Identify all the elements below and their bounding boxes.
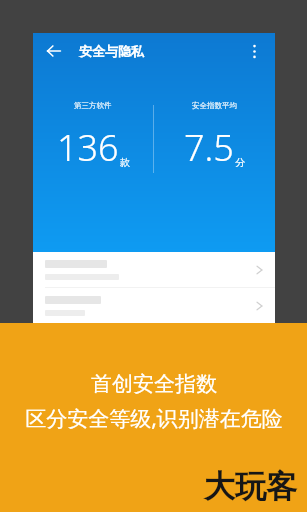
staticText: 7.5 [184, 123, 234, 172]
staticText: 安全指数平均 [192, 101, 237, 110]
button[interactable] [33, 288, 275, 323]
staticText: 安全与隐私 [79, 43, 144, 59]
staticText: 分 [235, 156, 245, 169]
staticText: 款 [120, 156, 130, 169]
staticText: 大玩客 [204, 467, 297, 506]
staticText: 136 [57, 123, 119, 172]
staticText: 第三方软件 [74, 101, 112, 110]
staticText: 区分安全等级,识别潜在危险 [25, 404, 283, 433]
button[interactable]: More options [241, 38, 267, 64]
button[interactable] [33, 252, 275, 287]
button[interactable]: 第三方软件 [33, 101, 153, 172]
button[interactable]: 安全指数平均 [154, 101, 275, 172]
staticText: 首创安全指数 [91, 371, 217, 397]
button[interactable]: Back [41, 38, 67, 64]
